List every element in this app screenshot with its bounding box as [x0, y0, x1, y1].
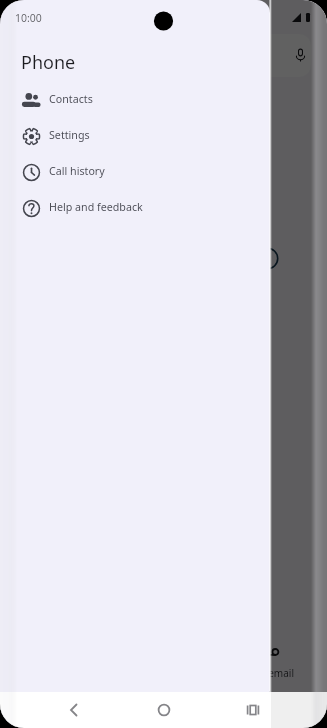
staticText: Phone — [21, 50, 76, 75]
button[interactable]: Help and feedback — [0, 190, 270, 226]
staticText: 10:00 — [15, 11, 42, 25]
button[interactable]: Settings — [0, 118, 270, 154]
staticText: Search contacts — [60, 48, 149, 64]
button[interactable]: Contacts — [0, 82, 270, 118]
button[interactable]: Recents — [241, 698, 265, 722]
staticText: Help and feedback — [49, 200, 143, 215]
staticText: Voicemail — [249, 666, 294, 680]
staticText: Contacts — [49, 92, 93, 107]
button[interactable]: Back — [62, 698, 86, 722]
staticText: Settings — [49, 128, 90, 143]
button[interactable]: Home — [152, 698, 176, 722]
button[interactable]: Call history — [0, 154, 270, 190]
staticText: Call history — [49, 164, 105, 179]
